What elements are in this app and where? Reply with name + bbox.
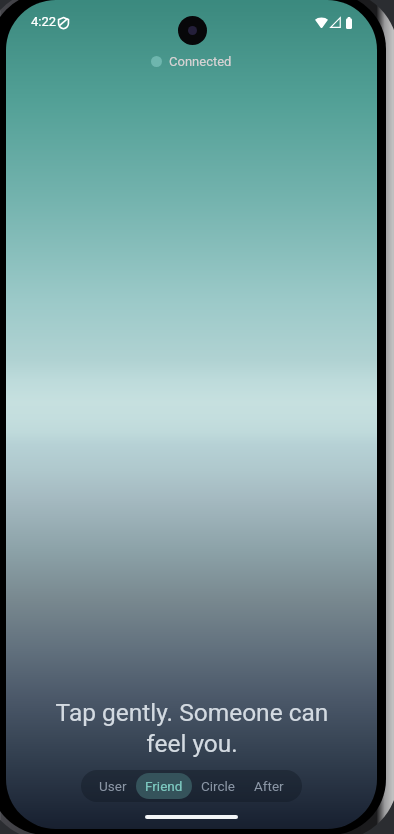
button[interactable]: User [90,773,136,799]
staticText: 4:22 [31,14,57,29]
staticText: Tap gently. Someone can feel you. [42,698,342,758]
other: Do not disturb [58,17,69,29]
button[interactable]: Friend [136,773,192,799]
other: Wi-Fi [315,17,328,28]
staticText: User [99,778,127,794]
other: Mobile signal [330,17,341,28]
button[interactable]: After [245,773,293,799]
staticText: After [254,778,284,794]
staticText: Circle [201,778,236,794]
staticText: Friend [145,778,183,794]
button[interactable]: Circle [192,773,245,799]
staticText: Connected [169,54,232,69]
other: Battery [346,17,352,29]
